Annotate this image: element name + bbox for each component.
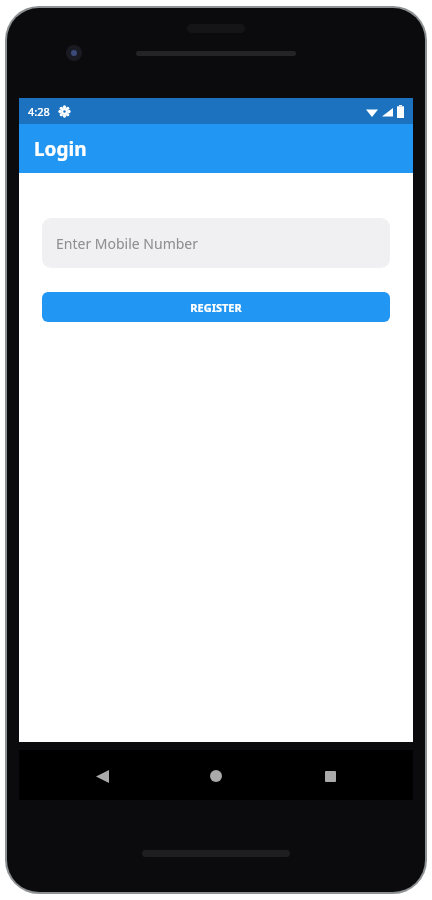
- button[interactable]: REGISTER: [42, 292, 390, 322]
- staticText: 4:28: [28, 104, 50, 119]
- staticText: REGISTER: [190, 300, 242, 315]
- button[interactable]: Home: [196, 756, 236, 796]
- staticText: Enter Mobile Number: [56, 234, 199, 253]
- button[interactable]: Enter Mobile Number: [42, 218, 390, 268]
- button[interactable]: Recent apps: [310, 756, 350, 796]
- staticText: Login: [34, 136, 87, 162]
- button[interactable]: Back: [82, 756, 122, 796]
